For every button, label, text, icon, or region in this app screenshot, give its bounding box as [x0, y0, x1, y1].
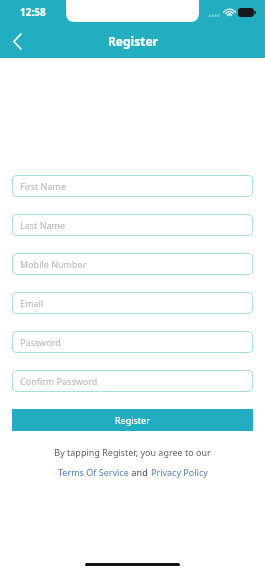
staticText: Mobile Number — [20, 258, 87, 270]
button[interactable]: First Name — [12, 175, 253, 197]
button[interactable]: Back — [0, 24, 34, 58]
button[interactable]: Register — [12, 409, 253, 431]
staticText: By tapping Register, you agree to our — [54, 446, 211, 458]
staticText: Last Name — [20, 219, 66, 231]
staticText: Register — [115, 414, 150, 426]
button[interactable]: Privacy Policy — [151, 466, 208, 478]
staticText: and — [129, 466, 151, 478]
button[interactable]: Confirm Password — [12, 370, 253, 392]
staticText: Password — [20, 336, 61, 348]
staticText: Confirm Password — [20, 375, 98, 387]
staticText: Privacy Policy — [151, 466, 208, 478]
staticText: Register — [108, 33, 158, 49]
staticText: First Name — [20, 180, 66, 192]
button[interactable]: Terms Of Service — [58, 466, 129, 478]
button[interactable]: Email — [12, 292, 253, 314]
staticText: 12:58 — [20, 5, 46, 19]
button[interactable]: Mobile Number — [12, 253, 253, 275]
staticText: Email — [20, 297, 44, 309]
button[interactable]: Last Name — [12, 214, 253, 236]
button[interactable]: Password — [12, 331, 253, 353]
staticText: Terms Of Service — [58, 466, 129, 478]
